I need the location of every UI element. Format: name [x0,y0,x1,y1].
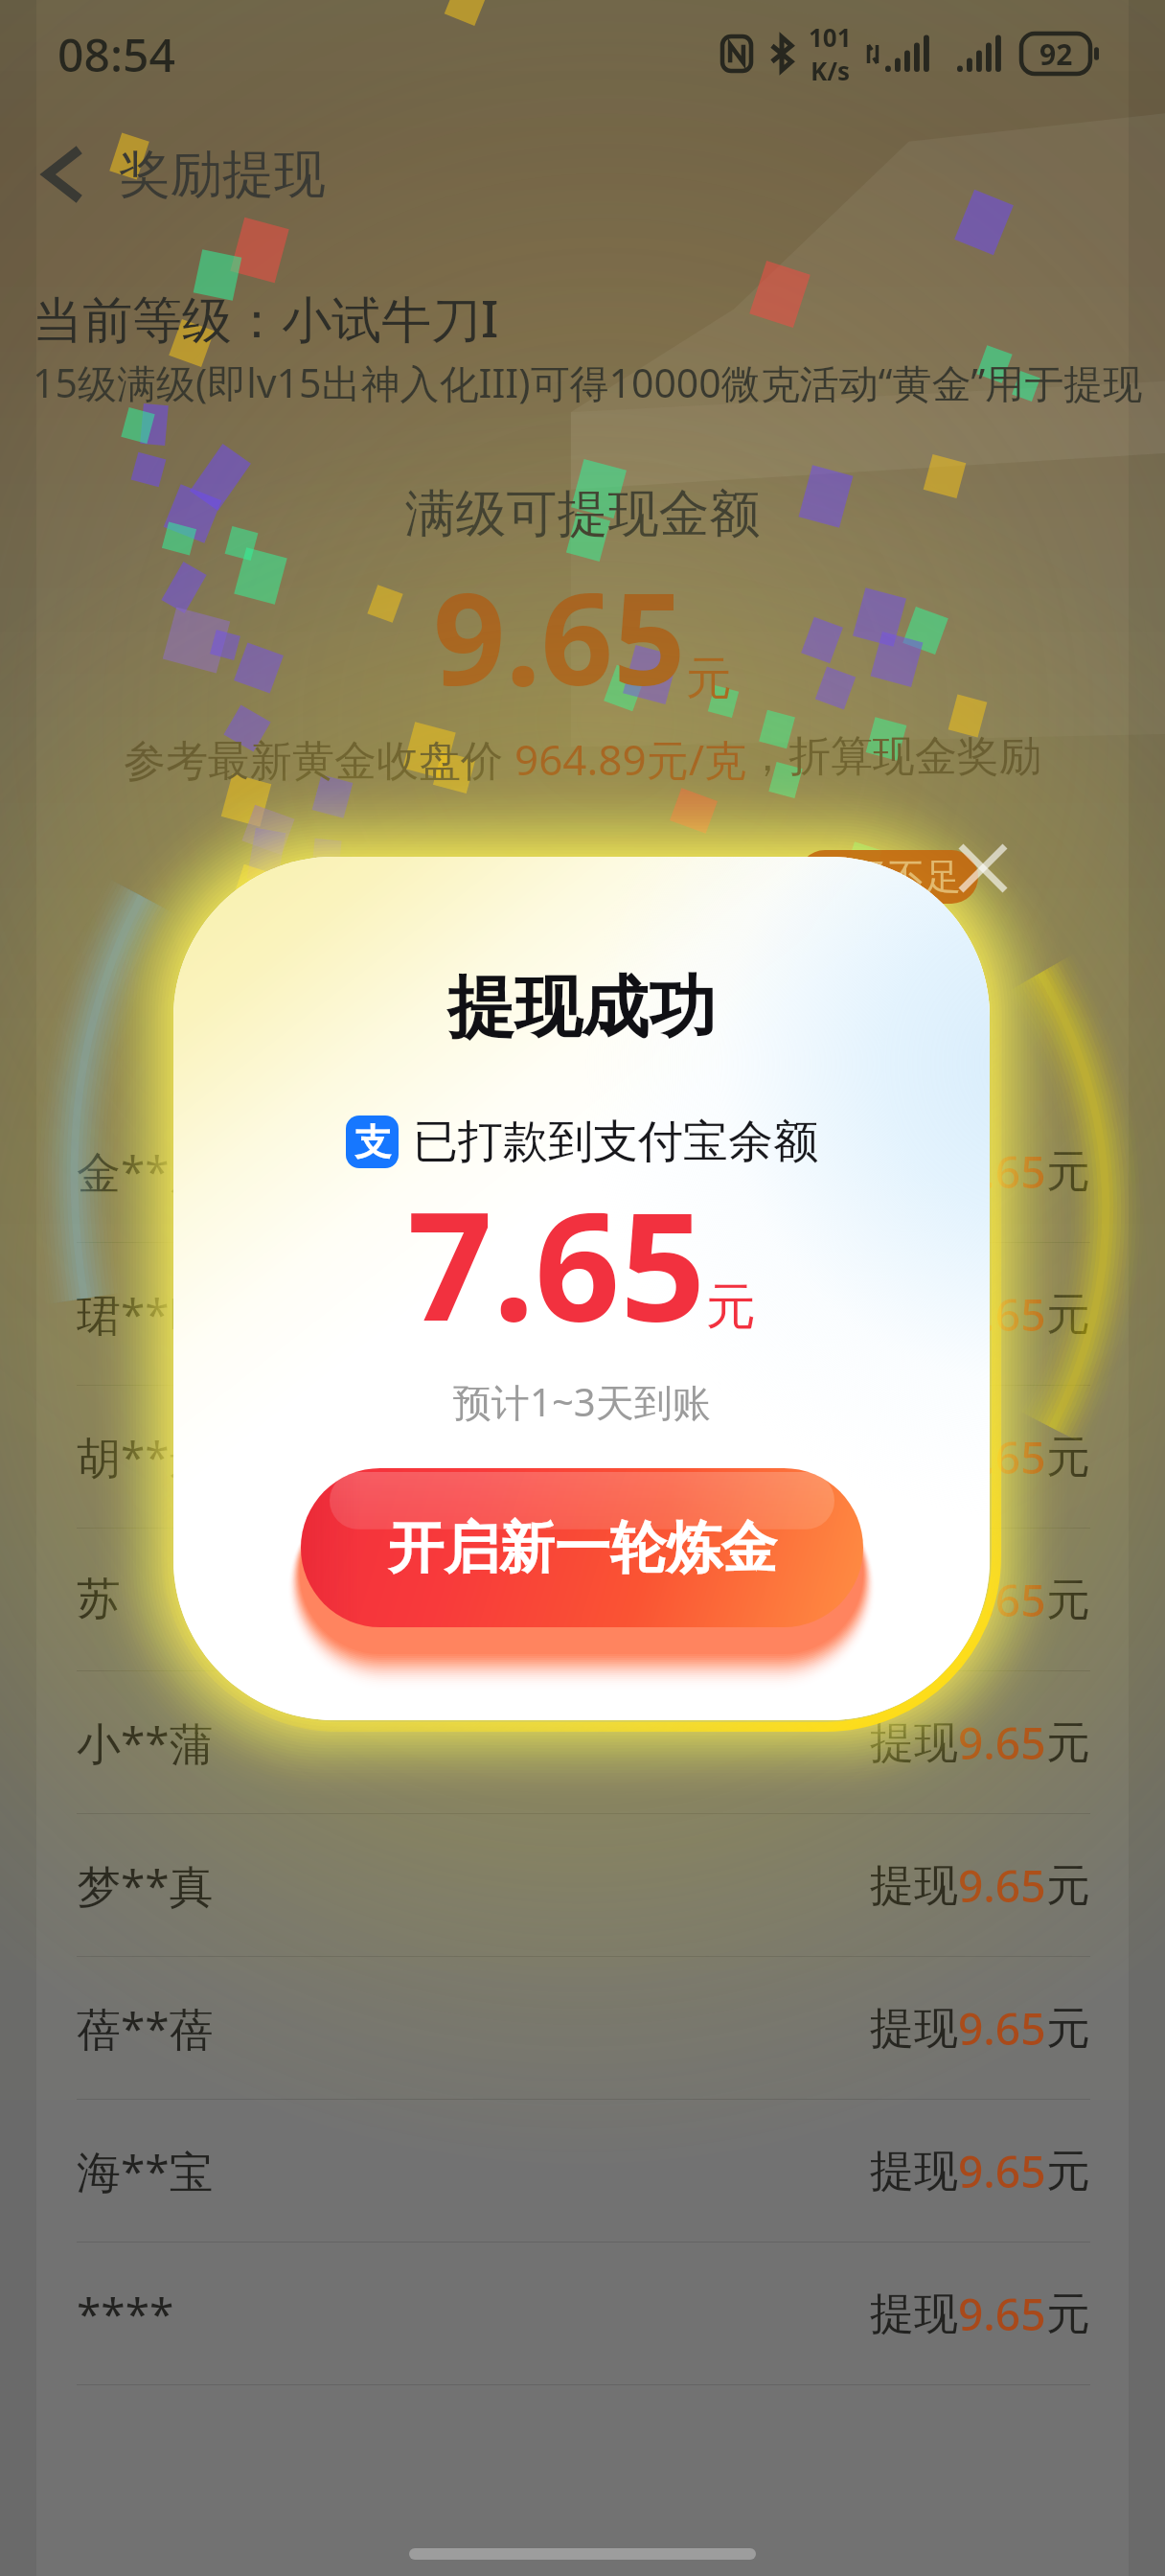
staticText: 92 [1039,34,1073,74]
staticText: 珺**旺 [77,1284,214,1345]
button[interactable]: 珺**旺 [0,1243,1165,1385]
button[interactable]: 小**蒲 [0,1671,1165,1813]
staticText: 苏 [77,1572,121,1627]
staticText: 元 [1046,2001,1090,2057]
staticText: 元 [1046,1573,1090,1628]
staticText: 提现 [870,1858,958,1914]
staticText: 9.65 [958,1998,1046,2058]
staticText: 9.65 [958,1427,1046,1487]
staticText: 支 [354,1119,391,1165]
staticText: 元 [706,1276,756,1339]
staticText: 08:54 [57,23,175,85]
button[interactable]: 海**宝 [0,2100,1165,2242]
button[interactable]: 梦**真 [0,1814,1165,1956]
staticText: 9.65 [958,2141,1046,2201]
staticText: 梦**真 [77,1855,214,1916]
button[interactable]: Back [21,130,109,218]
staticText: 开启新一轮炼金 [388,1513,777,1583]
staticText: 等级不足 [815,854,961,900]
staticText: 已打款到支付宝余额 [413,1114,818,1170]
button[interactable]: 胡**远 [0,1386,1165,1528]
staticText: 9.65 [958,1570,1046,1630]
staticText: 元 [1046,1144,1090,1200]
staticText: 元 [1046,2144,1090,2199]
button[interactable]: 金**厉 [0,1100,1165,1242]
staticText: 提现 [870,2001,958,2057]
button[interactable]: 等级不足 [798,850,978,904]
staticText: 提现 [870,2287,958,2342]
staticText: 提现 [870,2144,958,2199]
staticText: 元 [1046,1287,1090,1343]
staticText: 964.89元/克 [514,730,746,788]
staticText: 金**厉 [77,1141,214,1202]
button[interactable]: 蓓**蓓 [0,1957,1165,2099]
staticText: 101 [809,20,852,54]
staticText: 预计1~3天到账 [453,1375,711,1428]
staticText: 海**宝 [77,2141,214,2201]
staticText: K/s [811,54,851,87]
staticText: 满级可提现金额 [0,482,1165,546]
staticText: 9.65 [958,1713,1046,1773]
staticText: ，折算现金奖励 [746,730,1041,783]
staticText: 蓓**蓓 [77,1998,214,2058]
button[interactable]: 开启新一轮炼金 [301,1468,863,1627]
staticText: 提现成功 [447,966,716,1050]
staticText: 7.65 [407,1161,706,1364]
staticText: 9.65 [433,550,686,723]
staticText: 元 [1046,1858,1090,1914]
staticText: 15级满级(即lv15出神入化III)可得10000微克活动“黄金”用于提现 [33,356,1143,409]
staticText: 小**蒲 [77,1713,214,1773]
button[interactable]: Close [961,846,1005,890]
staticText: 奖励提现 [119,142,326,207]
staticText: 元 [1046,2287,1090,2342]
staticText: 9.65 [958,1284,1046,1345]
staticText: 提现 [870,1715,958,1771]
button[interactable]: **** [0,2242,1165,2384]
staticText: 参考最新黄金收盘价 [124,730,514,788]
staticText: 9.65 [958,1855,1046,1916]
staticText: **** [77,2284,174,2344]
staticText: 胡**远 [77,1427,214,1487]
staticText: 元 [1046,1715,1090,1771]
staticText: 元 [1046,1430,1090,1485]
staticText: 9.65 [958,2284,1046,2344]
button[interactable]: 苏 [0,1529,1165,1670]
staticText: 当前等级：小试牛刀I [33,284,499,352]
staticText: 9.65 [958,1141,1046,1202]
staticText: 元 [686,650,732,707]
